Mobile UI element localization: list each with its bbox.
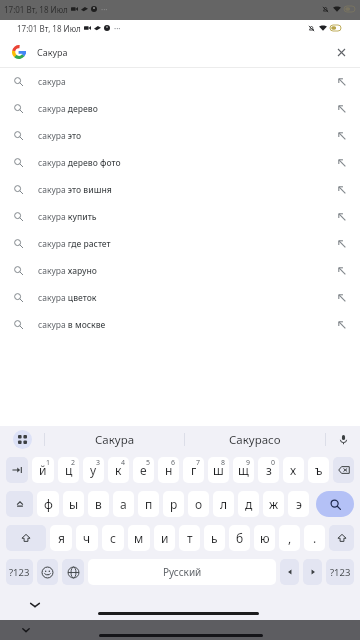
button[interactable]: р [163,491,184,517]
button[interactable]: Пробел [88,559,276,585]
button[interactable]: п [138,491,159,517]
button[interactable]: Вставить запрос [328,203,355,230]
button[interactable]: Верхний регистр [6,491,33,517]
staticText: ц [65,462,73,478]
staticText: с [110,530,116,546]
staticText: ··· [114,23,121,34]
button[interactable]: сакура это [0,122,360,149]
button[interactable]: сакура где растет [0,230,360,257]
button[interactable]: Вставить запрос [328,149,355,176]
button[interactable]: ч [76,525,98,551]
button[interactable]: ф [37,491,59,517]
button[interactable]: с [102,525,124,551]
button[interactable]: ж [263,491,284,517]
button[interactable]: м [128,525,150,551]
button[interactable]: Верхний регистр [329,525,354,551]
button[interactable]: сакура харуно [0,257,360,284]
button[interactable]: Вставить запрос [328,230,355,257]
button[interactable]: Скрыть клавиатуру [5,589,65,621]
button[interactable]: сакура цветок [0,284,360,311]
button[interactable]: сакура дерево фото [0,149,360,176]
button[interactable]: . [304,525,325,551]
button[interactable]: Влево [280,559,299,585]
button[interactable]: Вставить запрос [328,257,355,284]
button[interactable]: Сакура [0,37,360,67]
button[interactable]: ь [204,525,225,551]
staticText: Сакура [37,46,68,58]
staticText: 17:01 Вт, 18 Июл [4,4,68,15]
staticText: сакура в москве [38,319,106,331]
button[interactable]: ш [208,457,229,483]
staticText: сакура дерево [38,103,98,115]
button[interactable]: Tab [6,457,28,483]
button[interactable]: Сакурасо [185,426,325,453]
staticText: Русский [163,565,202,579]
button[interactable]: л [213,491,234,517]
button[interactable]: д [238,491,259,517]
button[interactable]: сакура купить [0,203,360,230]
staticText: г [191,462,197,478]
button[interactable]: Скрыть клавиатуру [1,620,51,640]
staticText: 8 [221,458,226,468]
button[interactable]: г [183,457,204,483]
button[interactable]: Вставить запрос [328,176,355,203]
staticText: б [236,530,244,546]
staticText: ?123 [330,566,351,579]
button[interactable]: Вставить запрос [328,311,355,338]
button[interactable]: сакура дерево [0,95,360,122]
staticText: п [145,496,153,512]
button[interactable]: Вставить запрос [328,68,355,95]
staticText: м [134,530,144,546]
button[interactable]: я [50,525,72,551]
button[interactable]: Эмодзи [37,559,58,585]
button[interactable]: е [133,457,154,483]
staticText: 5 [146,458,151,468]
button[interactable]: ъ [308,457,329,483]
button[interactable]: Голосовой ввод [326,426,360,453]
button[interactable]: Вправо [303,559,322,585]
staticText: и [161,530,169,546]
button[interactable]: Цифры и символы [6,559,33,585]
button[interactable]: у [83,457,104,483]
staticText: е [140,462,147,478]
button[interactable]: й [32,457,54,483]
button[interactable]: о [188,491,209,517]
staticText: , [288,530,292,546]
button[interactable]: в [88,491,109,517]
button[interactable]: ю [254,525,275,551]
button[interactable]: Цифры и символы [326,559,354,585]
button[interactable]: Поиск [316,491,354,517]
button[interactable]: Вставить запрос [328,284,355,311]
staticText: э [296,496,302,512]
button[interactable]: з [258,457,279,483]
staticText: ъ [315,462,323,478]
button[interactable]: Сменить язык [62,559,84,585]
button[interactable]: Верхний регистр [6,525,46,551]
staticText: сакура харуно [38,265,97,277]
button[interactable]: б [229,525,250,551]
button[interactable]: х [283,457,304,483]
button[interactable]: Удалить [333,457,354,483]
button[interactable]: Вставить запрос [328,95,355,122]
button[interactable]: э [288,491,309,517]
button[interactable]: сакура [0,68,360,95]
button[interactable]: и [154,525,175,551]
button[interactable]: щ [233,457,254,483]
button[interactable]: Сакура [45,426,184,453]
button[interactable]: т [179,525,200,551]
button[interactable]: Очистить [327,38,355,66]
button[interactable]: ы [63,491,84,517]
button[interactable]: ц [58,457,79,483]
button[interactable]: к [108,457,129,483]
button[interactable]: , [279,525,300,551]
staticText: сакура это вишня [38,184,112,196]
button[interactable]: сакура это вишня [0,176,360,203]
staticText: сакура дерево фото [38,157,121,169]
staticText: ы [69,496,79,512]
staticText: . [313,530,317,546]
button[interactable]: н [158,457,179,483]
button[interactable]: Вставить запрос [328,122,355,149]
button[interactable]: а [113,491,134,517]
button[interactable]: Панель инструментов [0,426,44,453]
button[interactable]: сакура в москве [0,311,360,338]
